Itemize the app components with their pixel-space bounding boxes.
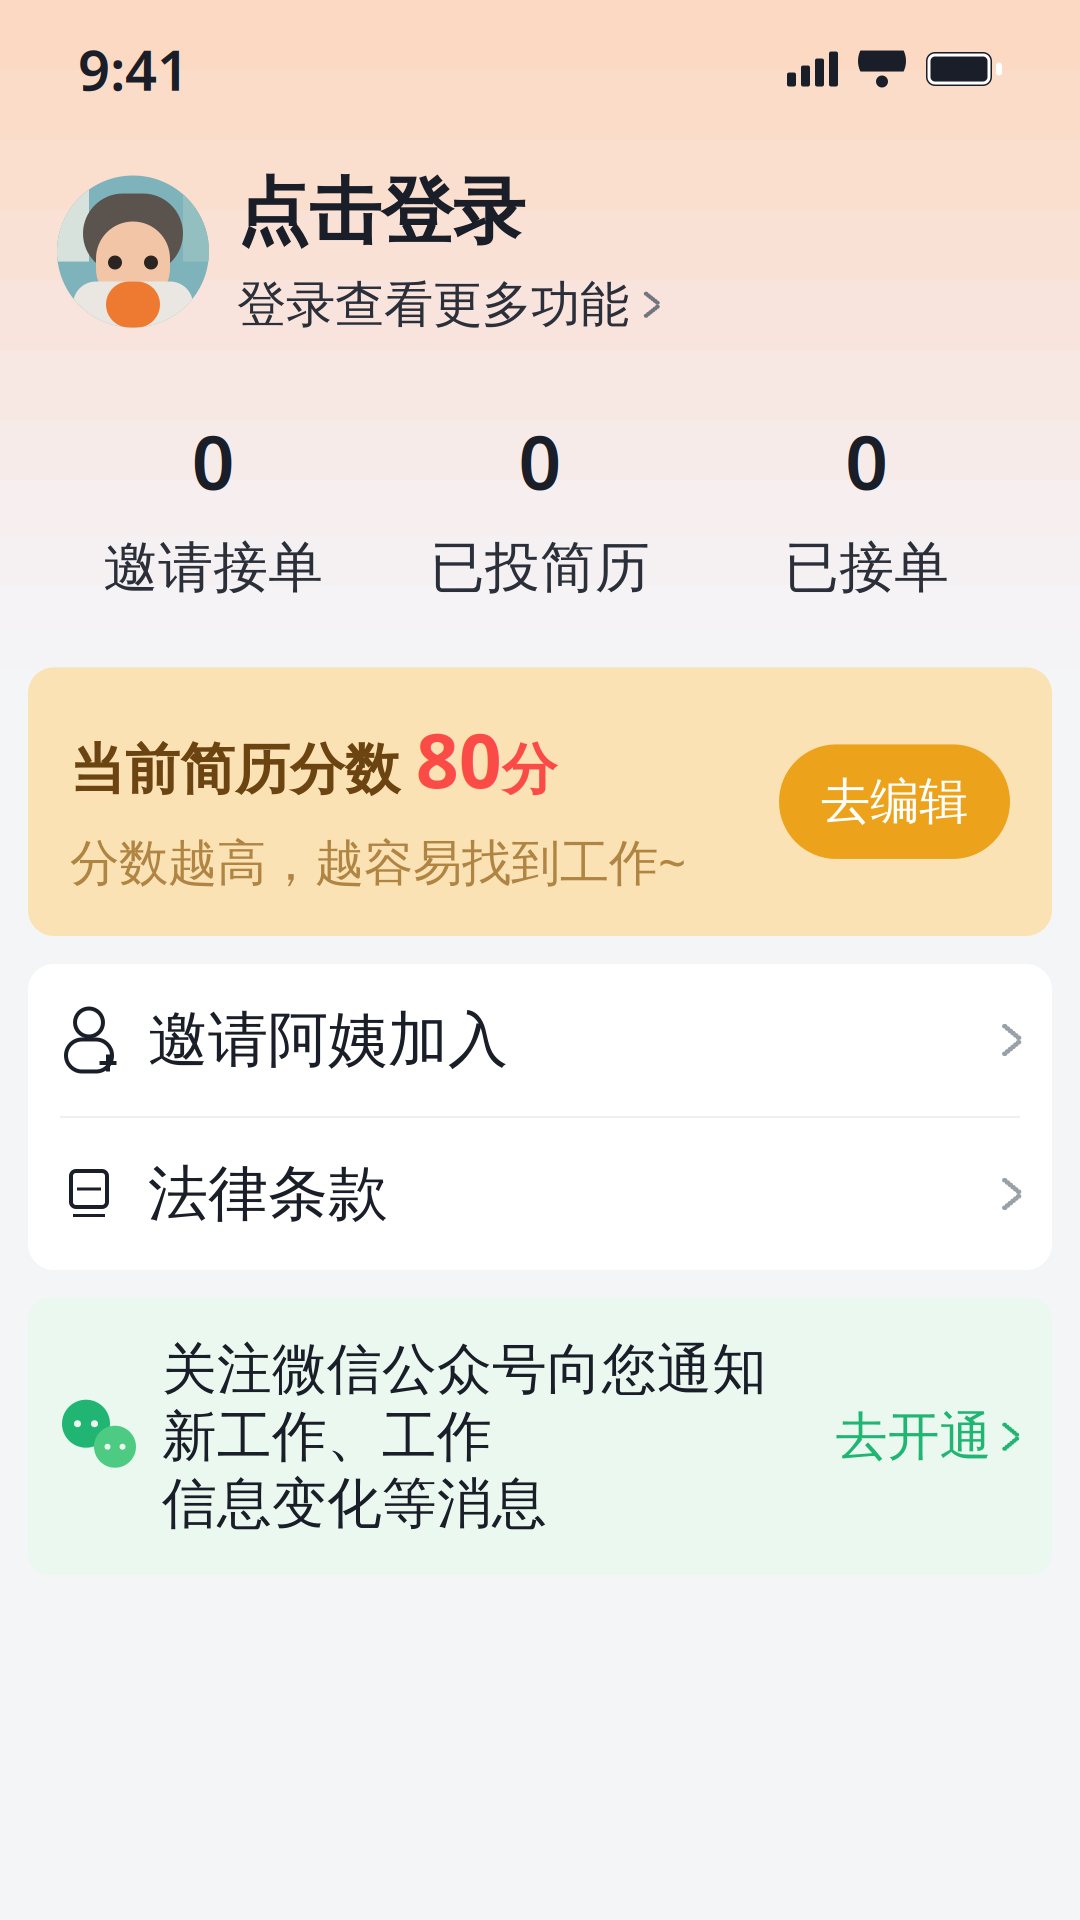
staticText: 分数越高，越容易找到工作~ (70, 828, 686, 894)
button[interactable]: 0 (703, 411, 1030, 601)
button[interactable]: 0 (50, 411, 377, 601)
staticText: 分 (502, 736, 557, 803)
staticText: 邀请接单 (103, 534, 323, 601)
staticText: 当前简历分数 (70, 736, 416, 803)
staticText: 关注微信公众号向您通知新工作、工作 信息变化等消息 (162, 1336, 767, 1537)
button[interactable]: 0 (377, 411, 703, 601)
button[interactable]: 关注微信公众号向您通知新工作、工作 信息变化等消息 (28, 1298, 1052, 1575)
button[interactable]: 点击登录 (0, 104, 1080, 335)
staticText: 0 (518, 411, 561, 510)
staticText: 邀请阿姨加入 (148, 1003, 508, 1077)
staticText: 已投简历 (430, 534, 650, 601)
staticText: 去编辑 (821, 771, 968, 832)
staticText: 去开通 (835, 1405, 991, 1469)
button[interactable]: 邀请阿姨加入 (28, 964, 1052, 1116)
staticText: 9:41 (78, 32, 189, 106)
staticText: 0 (845, 411, 888, 510)
button[interactable]: 去编辑 (779, 744, 1010, 859)
staticText: 0 (192, 411, 235, 510)
staticText: 法律条款 (148, 1157, 388, 1231)
staticText: 已接单 (784, 534, 949, 601)
staticText: 点击登录 (237, 168, 525, 256)
button[interactable]: 法律条款 (28, 1118, 1052, 1270)
staticText: 登录查看更多功能 (237, 274, 629, 335)
staticText: 80 (416, 709, 502, 808)
